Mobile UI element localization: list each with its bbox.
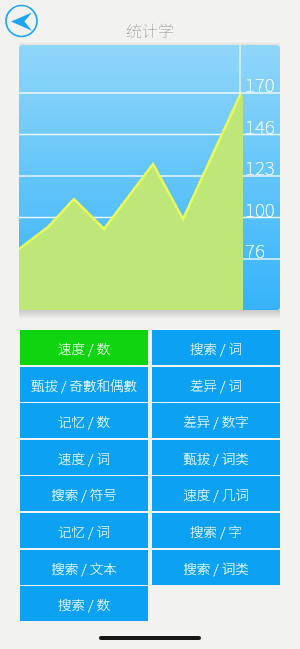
staticText: 搜索 / 数 <box>58 594 110 614</box>
staticText: 146 <box>245 112 275 140</box>
button[interactable]: 搜索 / 词类 <box>152 550 280 585</box>
staticText: 搜索 / 文本 <box>51 558 117 578</box>
staticText: 速度 / 几词 <box>183 484 249 504</box>
staticText: 搜索 / 符号 <box>51 484 117 504</box>
staticText: 搜索 / 词类 <box>183 558 249 578</box>
button[interactable]: 差异 / 词 <box>152 367 280 402</box>
button[interactable]: 搜索 / 数 <box>20 586 148 621</box>
button[interactable]: 速度 / 数 <box>20 330 148 365</box>
staticText: 100 <box>245 195 275 223</box>
button[interactable]: 速度 / 几词 <box>152 476 280 511</box>
staticText: 差异 / 词 <box>190 375 242 395</box>
staticText: 统计学 <box>126 18 175 41</box>
staticText: 170 <box>245 70 275 98</box>
staticText: 123 <box>245 153 275 181</box>
button[interactable]: 搜索 / 词 <box>152 330 280 365</box>
staticText: 记忆 / 词 <box>58 521 110 541</box>
button[interactable]: 记忆 / 数 <box>20 403 148 438</box>
button[interactable]: 甄拔 / 奇數和偶數 <box>20 367 148 402</box>
staticText: 搜索 / 词 <box>190 338 242 358</box>
button[interactable]: 速度 / 词 <box>20 440 148 475</box>
staticText: 速度 / 词 <box>58 448 110 468</box>
staticText: 甄拔 / 奇數和偶數 <box>31 375 137 395</box>
button[interactable]: 甄拔 / 词类 <box>152 440 280 475</box>
button[interactable]: 搜索 / 符号 <box>20 476 148 511</box>
button[interactable]: 记忆 / 词 <box>20 513 148 548</box>
staticText: 记忆 / 数 <box>58 411 110 431</box>
button[interactable]: 搜索 / 文本 <box>20 550 148 585</box>
staticText: 甄拔 / 词类 <box>183 448 249 468</box>
button[interactable] <box>5 4 39 38</box>
staticText: 76 <box>245 236 265 264</box>
staticText: 差异 / 数字 <box>183 411 249 431</box>
button[interactable]: 搜索 / 字 <box>152 513 280 548</box>
staticText: 速度 / 数 <box>58 338 110 358</box>
button[interactable]: 差异 / 数字 <box>152 403 280 438</box>
staticText: 搜索 / 字 <box>190 521 242 541</box>
